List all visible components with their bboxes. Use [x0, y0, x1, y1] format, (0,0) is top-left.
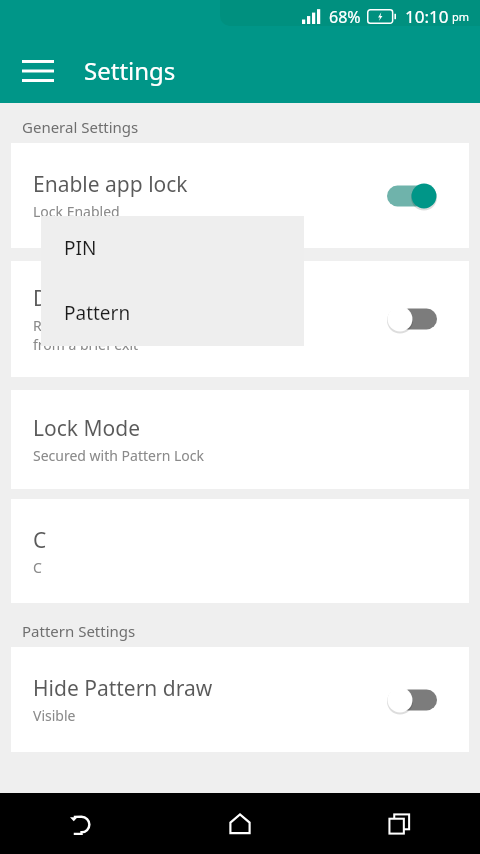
button[interactable]: Toggle off [385, 302, 439, 336]
button[interactable]: Back [0, 793, 160, 854]
staticText: Hide Pattern draw [33, 674, 213, 703]
staticText: Re-lock is not required when returning f… [33, 316, 286, 354]
button[interactable]: Toggle off [385, 683, 439, 717]
button[interactable]: Hide Pattern draw [11, 647, 469, 752]
staticText: Secured with Pattern Lock [33, 446, 204, 465]
staticText: Enable app lock [33, 170, 188, 199]
button[interactable]: C [11, 499, 469, 603]
button[interactable]: Open navigation drawer [12, 45, 64, 97]
staticText: Visible [33, 706, 76, 725]
staticText: 68% [329, 6, 361, 28]
button[interactable]: Recent apps [320, 793, 480, 854]
staticText: Lock Enabled [33, 202, 120, 221]
staticText: Lock Mode [33, 414, 140, 443]
staticText: Pattern [64, 300, 131, 326]
button[interactable]: Pattern [41, 280, 304, 346]
button[interactable]: Lock Mode [11, 390, 469, 489]
staticText: Settings [84, 54, 176, 87]
button[interactable]: Toggle on [385, 179, 439, 213]
staticText: Delay to lock [33, 284, 159, 313]
button[interactable]: Home [160, 793, 320, 854]
staticText: General Settings [22, 117, 139, 137]
button[interactable]: Enable app lock [11, 143, 469, 248]
staticText: 10:10 [405, 5, 449, 28]
staticText: PIN [64, 235, 97, 261]
staticText: Pattern Settings [22, 621, 136, 641]
button[interactable]: PIN [41, 216, 304, 280]
staticText: C [33, 526, 47, 555]
button[interactable]: Delay to lock [11, 261, 469, 377]
staticText: C [33, 558, 42, 577]
staticText: pm [452, 9, 470, 24]
